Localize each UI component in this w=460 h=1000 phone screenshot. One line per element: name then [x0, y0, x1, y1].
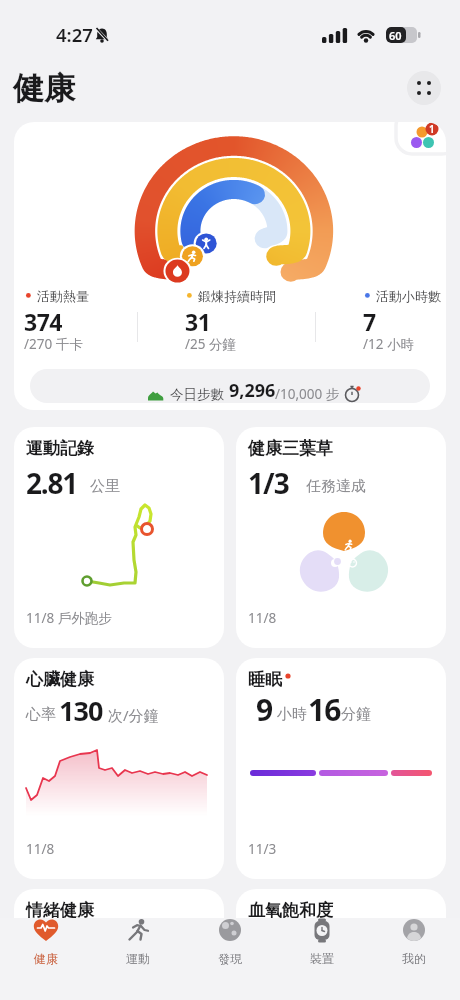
staticText: /270 千卡 [24, 335, 83, 353]
staticText: 11/8 戶外跑步 [26, 609, 112, 627]
button[interactable]: 血氧飽和度 [236, 889, 446, 1000]
staticText: 31 [185, 306, 211, 337]
staticText: 60 [389, 28, 402, 43]
staticText: 130 [59, 692, 103, 729]
button[interactable]: 我的 [379, 918, 449, 978]
staticText: 發現 [218, 951, 242, 966]
staticText: 健康 [34, 951, 58, 966]
button[interactable]: 健康三葉草 [236, 427, 446, 648]
button[interactable]: 今日步數 [30, 369, 430, 403]
staticText: 11/8 [248, 609, 277, 627]
staticText: /10,000 步 [275, 385, 340, 403]
button[interactable]: 1 [14, 122, 446, 410]
staticText: 今日步數 [170, 386, 224, 403]
staticText: 心臟健康 [26, 669, 94, 690]
staticText: 7 [363, 306, 376, 337]
staticText: 公里 [90, 477, 120, 496]
staticText: 次/分鐘 [108, 705, 159, 725]
button[interactable]: 健康 [11, 918, 81, 978]
staticText: 1 [429, 122, 435, 136]
staticText: 小時 [277, 705, 307, 724]
staticText: /25 分鐘 [185, 335, 236, 353]
staticText: 運動記錄 [26, 438, 94, 459]
staticText: 健康三葉草 [248, 438, 333, 459]
staticText: 心率 [26, 705, 56, 724]
button[interactable]: 情緒健康 [14, 889, 224, 1000]
staticText: 9 [256, 689, 274, 730]
staticText: 2.81 [26, 464, 78, 502]
staticText: 睡眠 [248, 669, 282, 690]
staticText: 11/8 [26, 840, 55, 858]
button[interactable]: 運動 [103, 918, 173, 978]
button[interactable]: 運動記錄 [14, 427, 224, 648]
staticText: 裝置 [310, 951, 334, 966]
staticText: 活動小時數 [376, 288, 441, 304]
staticText: 血氧飽和度 [248, 900, 333, 921]
staticText: 9,296 [229, 378, 276, 403]
staticText: 16 [308, 689, 341, 730]
staticText: 374 [24, 306, 62, 337]
staticText: 1/3 [248, 464, 289, 502]
button[interactable]: 發現 [195, 918, 265, 978]
staticText: 任務達成 [306, 477, 366, 496]
staticText: 健康 [13, 69, 75, 108]
staticText: 情緒健康 [26, 900, 94, 921]
staticText: 我的 [402, 951, 426, 966]
staticText: 活動熱量 [37, 288, 89, 304]
button[interactable] [407, 71, 441, 105]
staticText: /12 小時 [363, 335, 414, 353]
button[interactable]: 心臟健康 [14, 658, 224, 879]
button[interactable]: 睡眠 [236, 658, 446, 879]
staticText: 4:27 [56, 22, 93, 47]
staticText: 鍛煉持續時間 [198, 288, 276, 304]
staticText: 分鐘 [341, 705, 371, 724]
button[interactable]: 裝置 [287, 918, 357, 978]
staticText: 運動 [126, 951, 150, 966]
staticText: 11/3 [248, 840, 277, 858]
